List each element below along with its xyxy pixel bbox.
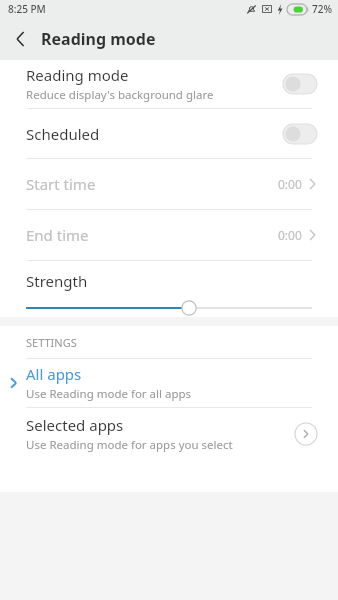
staticText: 72% <box>312 2 332 16</box>
staticText: Selected apps <box>26 415 124 435</box>
staticText: All apps <box>26 364 82 384</box>
staticText: Reading mode <box>41 28 156 50</box>
button[interactable]: Start time <box>0 159 338 209</box>
staticText: Strength <box>26 271 88 291</box>
button[interactable]: All apps <box>0 359 338 407</box>
staticText: Scheduled <box>26 124 100 144</box>
button[interactable]: Back <box>0 19 40 59</box>
staticText: 0:00 <box>278 176 302 192</box>
staticText: Start time <box>26 174 278 194</box>
staticText: SETTINGS <box>26 335 77 350</box>
staticText: Reduce display's background glare <box>26 87 214 103</box>
button[interactable]: Reading mode <box>0 60 338 108</box>
staticText: Use Reading mode for all apps <box>26 386 192 402</box>
button[interactable]: Strength <box>0 261 338 317</box>
button[interactable]: Toggle <box>283 74 317 94</box>
staticText: End time <box>26 225 278 245</box>
button[interactable]: End time <box>0 210 338 260</box>
button[interactable]: Toggle <box>283 124 317 144</box>
button[interactable]: Open selected apps <box>294 422 318 446</box>
button[interactable]: Selected apps <box>0 408 338 460</box>
staticText: 8:25 PM <box>8 2 46 16</box>
staticText: Reading mode <box>26 65 129 85</box>
staticText: 0:00 <box>278 227 302 243</box>
staticText: Use Reading mode for apps you select <box>26 437 233 453</box>
button[interactable]: Scheduled <box>0 109 338 158</box>
